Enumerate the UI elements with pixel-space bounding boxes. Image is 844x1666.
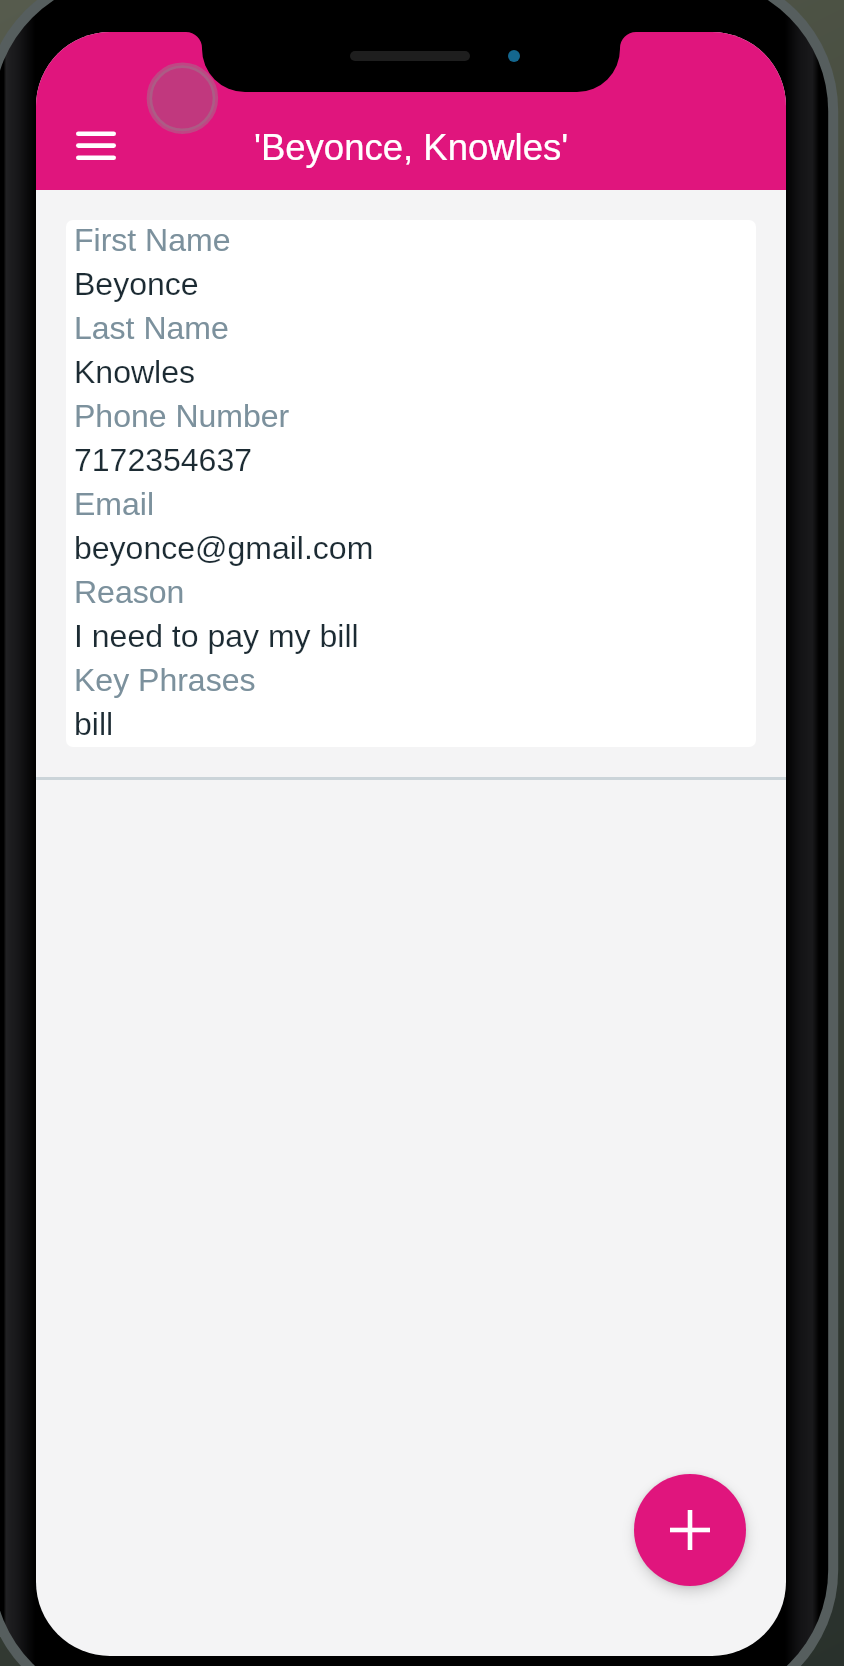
staticText: Beyonce [74,266,199,302]
staticText: 'Beyonce, Knowles' [254,127,569,168]
staticText: Last Name [74,310,229,346]
staticText: Knowles [74,354,195,390]
button[interactable]: Open navigation menu [56,100,128,172]
staticText: beyonce@gmail.com [74,530,374,566]
staticText: bill [74,706,114,742]
staticText: Phone Number [74,398,290,434]
staticText: Email [74,486,155,522]
staticText: Reason [74,574,185,610]
staticText: I need to pay my bill [74,618,359,654]
staticText: First Name [74,222,231,258]
button[interactable]: Add contact [634,1474,746,1586]
staticText: 7172354637 [74,442,252,478]
button[interactable]: First Name [66,220,756,747]
staticText: Key Phrases [74,662,256,698]
